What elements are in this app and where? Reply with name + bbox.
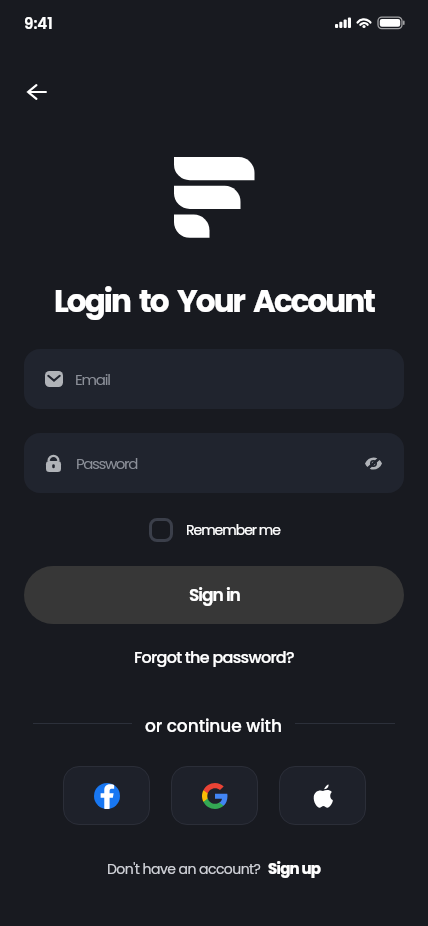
staticText: Account bbox=[253, 279, 374, 322]
staticText: Your bbox=[177, 279, 244, 322]
button[interactable]: Sign in bbox=[24, 566, 404, 624]
staticText: Sign in bbox=[189, 583, 240, 607]
staticText: 9:41 bbox=[24, 13, 53, 34]
button[interactable]: Sign in with Facebook bbox=[63, 766, 150, 825]
staticText: Email bbox=[75, 369, 110, 390]
button[interactable]: Password bbox=[24, 433, 404, 493]
staticText: Password bbox=[76, 453, 137, 474]
button[interactable]: Forgot the password? bbox=[128, 640, 300, 674]
staticText: Remember me bbox=[186, 520, 280, 540]
staticText: Sign up bbox=[268, 858, 321, 879]
staticText: to bbox=[139, 279, 168, 322]
button[interactable]: Show password bbox=[360, 450, 386, 476]
staticText: or continue with bbox=[145, 714, 282, 733]
staticText: Don't have an account? bbox=[107, 859, 261, 879]
staticText: Login bbox=[54, 279, 130, 322]
button[interactable]: Remember me bbox=[143, 512, 286, 548]
button[interactable]: Back bbox=[13, 68, 61, 116]
button[interactable]: Email bbox=[24, 349, 404, 409]
button[interactable]: Sign in with Google bbox=[171, 766, 258, 825]
button[interactable]: Sign in with Apple bbox=[279, 766, 366, 825]
button[interactable]: Sign up bbox=[268, 858, 321, 879]
staticText: Forgot the password? bbox=[134, 646, 294, 668]
